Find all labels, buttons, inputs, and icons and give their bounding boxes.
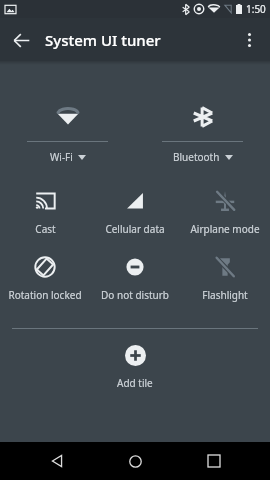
button[interactable]: Wi-Fi (0, 107, 135, 164)
staticText: Rotation locked (8, 288, 82, 302)
staticText: Cellular data (105, 222, 165, 236)
staticText: System UI tuner (45, 30, 161, 50)
button[interactable]: Flashlight (180, 256, 270, 302)
button[interactable]: Back (35, 442, 79, 480)
staticText: Wi-Fi (50, 150, 73, 164)
button[interactable]: Back (5, 24, 37, 56)
button[interactable]: Do not disturb (90, 256, 180, 302)
button[interactable]: Airplane mode (180, 190, 270, 236)
staticText: 1:50 (246, 2, 266, 16)
staticText: Airplane mode (190, 222, 260, 236)
button[interactable]: Bluetooth (135, 107, 270, 164)
button[interactable]: Add tile (0, 345, 270, 390)
staticText: Flashlight (202, 288, 248, 302)
button[interactable]: Home (113, 442, 157, 480)
button[interactable]: Cellular data (90, 190, 180, 236)
button[interactable]: Cast (0, 190, 90, 236)
staticText: Do not disturb (101, 288, 169, 302)
button[interactable]: Recents (192, 442, 236, 480)
button[interactable]: Rotation locked (0, 256, 90, 302)
staticText: Add tile (117, 376, 153, 390)
staticText: Bluetooth (173, 150, 220, 164)
button[interactable]: More options (233, 24, 265, 56)
staticText: Cast (35, 222, 56, 236)
